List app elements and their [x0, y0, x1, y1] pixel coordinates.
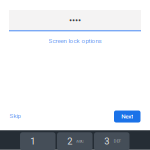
button[interactable]: Skip [8, 112, 22, 120]
staticText: 2 [67, 136, 72, 147]
button[interactable]: 1 [20, 132, 55, 150]
staticText: Skip [9, 112, 20, 120]
staticText: 3 [104, 136, 109, 147]
button[interactable]: 3 [94, 132, 129, 150]
button[interactable]: Next [114, 110, 140, 122]
staticText: 1 [30, 136, 35, 147]
button[interactable]: 2 [57, 132, 92, 150]
staticText: •••• [69, 14, 81, 25]
staticText: Next [121, 113, 133, 120]
staticText: DEF [114, 139, 121, 144]
button[interactable]: Screen lock options [0, 37, 150, 45]
staticText: Screen lock options [48, 37, 101, 45]
staticText: ABC [76, 139, 84, 144]
